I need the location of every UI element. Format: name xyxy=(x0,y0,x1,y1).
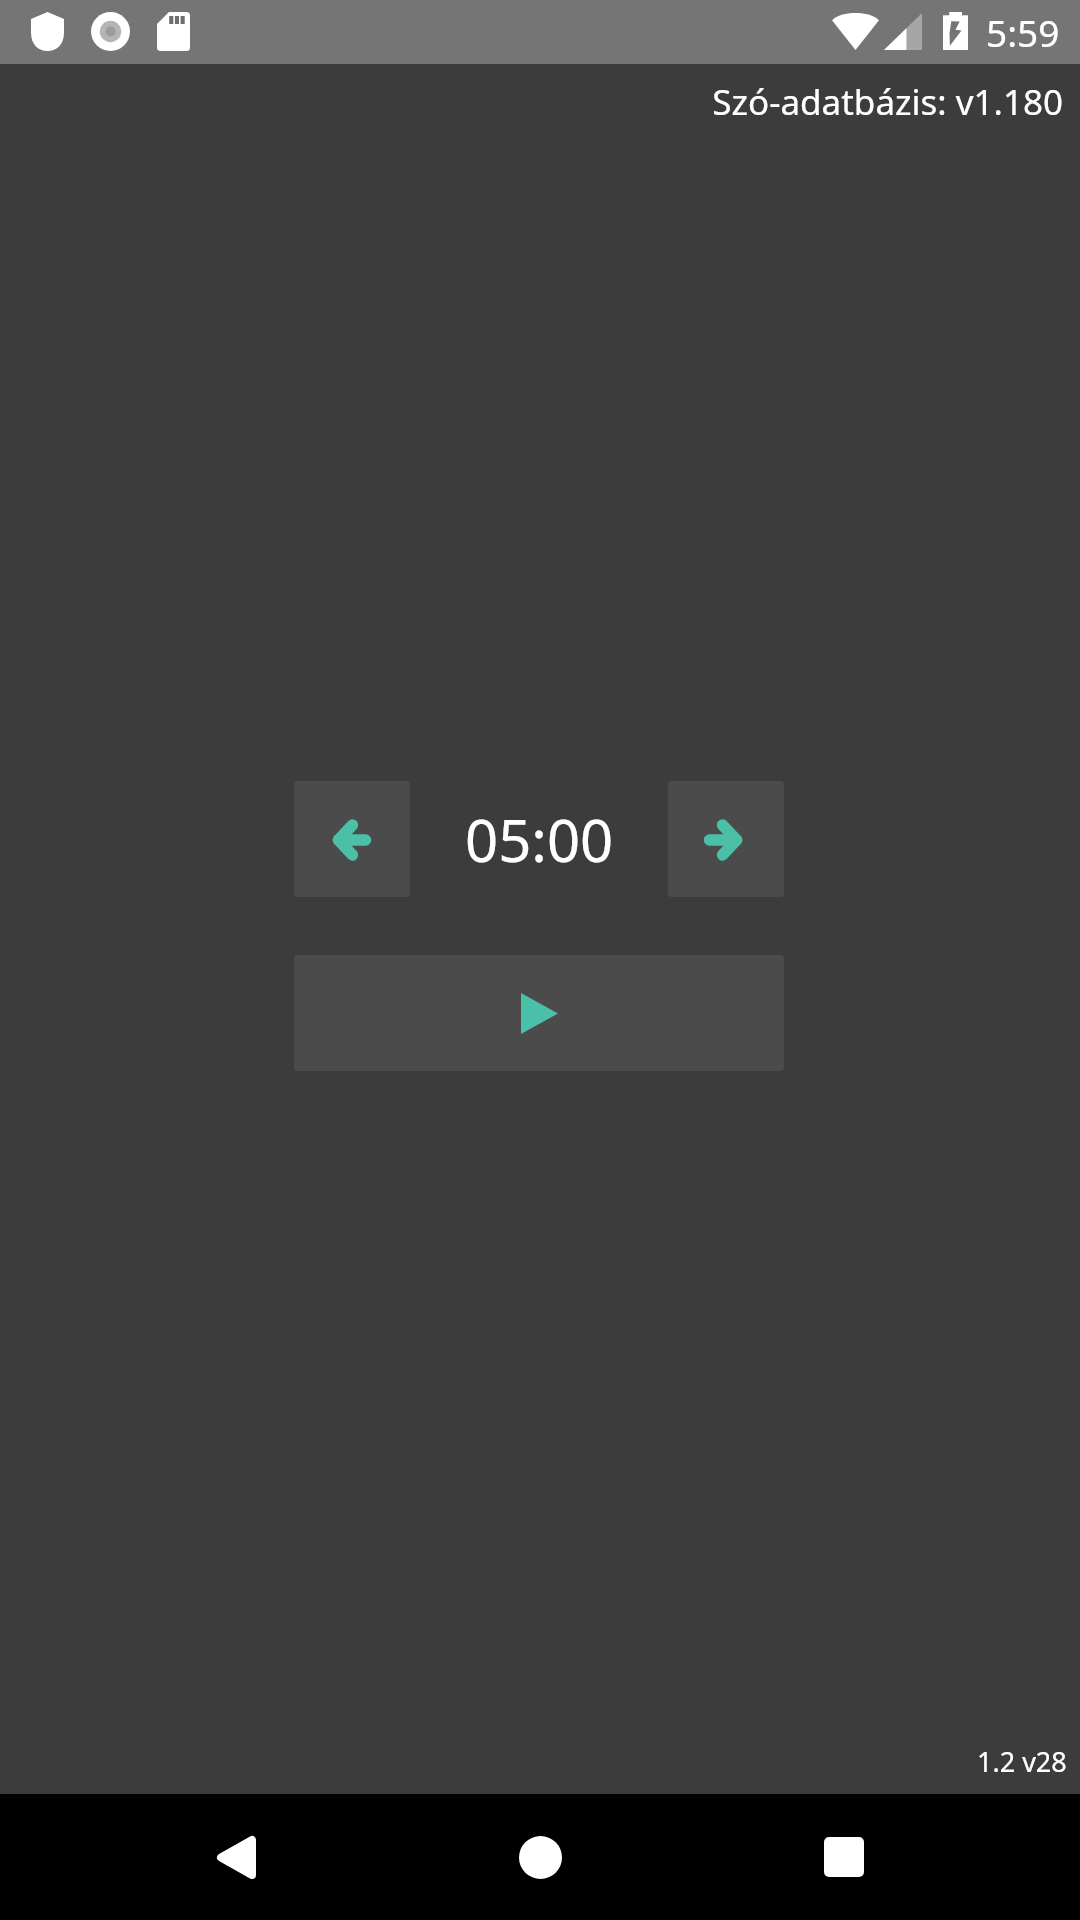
button[interactable]: Back xyxy=(194,1815,278,1899)
button[interactable]: Home xyxy=(498,1815,582,1899)
button[interactable]: Increase time xyxy=(668,781,784,897)
staticText: Szó-adatbázis: v1.180 xyxy=(712,78,1063,126)
staticText: 5:59 xyxy=(986,7,1060,57)
button[interactable]: Recents xyxy=(802,1815,886,1899)
button[interactable]: Start xyxy=(294,955,784,1071)
staticText: 05:00 xyxy=(465,800,614,879)
staticText: 1.2 v28 xyxy=(977,1743,1067,1780)
button[interactable]: Decrease time xyxy=(294,781,410,897)
